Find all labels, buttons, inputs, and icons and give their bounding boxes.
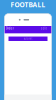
button[interactable]: edit — [41, 27, 47, 30]
staticText: FOOTBALL — [10, 0, 45, 9]
button[interactable]: Submit — [8, 36, 47, 41]
staticText: Submit — [23, 37, 32, 40]
button[interactable]: Back — [19, 19, 21, 21]
staticText: edit — [41, 27, 47, 30]
staticText: Order — [6, 27, 14, 30]
